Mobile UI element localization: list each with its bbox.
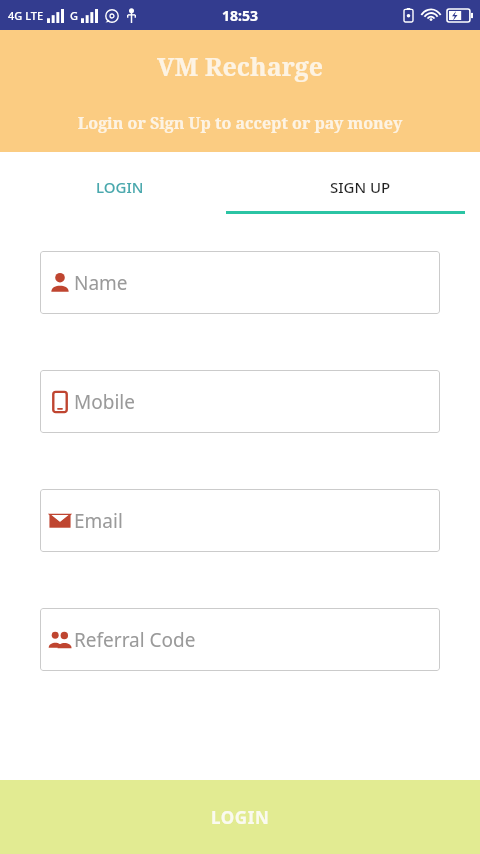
staticText: VM Recharge [157,49,324,83]
button[interactable]: Email [40,489,440,552]
staticText: SIGN UP [330,177,391,197]
staticText: Name [74,270,128,296]
staticText: Mobile [74,389,135,415]
staticText: 18:53 [222,6,258,25]
button[interactable]: LOGIN [0,780,480,854]
staticText: Login or Sign Up to accept or pay money [0,112,480,134]
button[interactable]: SIGN UP [240,152,480,214]
button[interactable]: Mobile [40,370,440,433]
staticText: G [70,8,78,23]
button[interactable]: Referral Code [40,608,440,671]
button[interactable]: LOGIN [0,152,240,214]
staticText: LOGIN [211,806,270,829]
staticText: Referral Code [74,627,196,653]
staticText: LOGIN [96,177,144,197]
button[interactable]: Name [40,251,440,314]
staticText: Email [74,508,123,534]
staticText: 4G LTE [8,8,44,23]
